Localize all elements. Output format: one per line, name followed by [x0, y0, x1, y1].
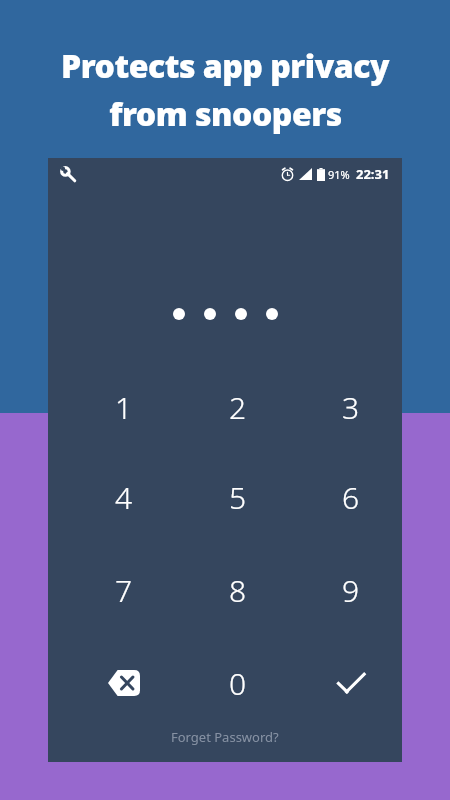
- staticText: 9: [342, 570, 360, 611]
- button[interactable]: 9: [301, 552, 401, 628]
- staticText: 5: [229, 477, 247, 518]
- staticText: 2: [229, 387, 247, 428]
- button[interactable]: 4: [74, 459, 174, 535]
- button[interactable]: 0: [188, 645, 288, 721]
- staticText: 3: [342, 387, 360, 428]
- staticText: 8: [229, 570, 247, 611]
- button[interactable]: 2: [188, 369, 288, 445]
- staticText: 0: [229, 663, 247, 704]
- button[interactable]: 3: [301, 369, 401, 445]
- staticText: from snoopers: [109, 92, 342, 136]
- staticText: 4: [115, 477, 133, 518]
- staticText: Protects app privacy: [61, 44, 389, 88]
- button[interactable]: 5: [188, 459, 288, 535]
- staticText: Forget Password?: [171, 728, 279, 746]
- staticText: 7: [115, 570, 133, 611]
- staticText: 91%: [328, 167, 350, 182]
- button[interactable]: Backspace: [74, 645, 174, 721]
- button[interactable]: Confirm: [301, 645, 401, 721]
- button[interactable]: 1: [74, 369, 174, 445]
- button[interactable]: 8: [188, 552, 288, 628]
- button[interactable]: Forget Password?: [159, 724, 291, 750]
- button[interactable]: 7: [74, 552, 174, 628]
- button[interactable]: 6: [301, 459, 401, 535]
- staticText: 22:31: [356, 165, 390, 183]
- staticText: 6: [342, 477, 360, 518]
- staticText: 1: [115, 387, 133, 428]
- other: Developer options: [60, 166, 78, 184]
